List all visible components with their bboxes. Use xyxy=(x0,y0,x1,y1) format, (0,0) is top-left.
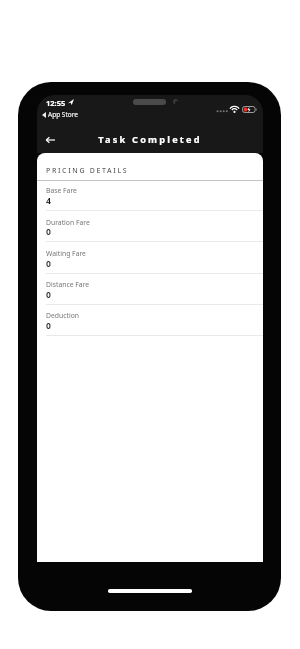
staticText: 4 xyxy=(46,195,51,207)
button[interactable] xyxy=(37,246,263,277)
staticText: Waiting Fare xyxy=(46,249,86,258)
staticText: 0 xyxy=(46,258,51,270)
staticText: PRICING DETAILS xyxy=(46,166,129,176)
button[interactable] xyxy=(37,308,263,339)
staticText: Deduction xyxy=(46,311,79,320)
staticText: 12:55 xyxy=(46,98,66,108)
button[interactable] xyxy=(37,277,263,308)
button[interactable] xyxy=(37,183,263,214)
button[interactable] xyxy=(37,214,263,245)
button[interactable] xyxy=(42,132,58,147)
staticText: Distance Fare xyxy=(46,280,90,289)
staticText: Task Completed xyxy=(98,133,202,146)
staticText: 0 xyxy=(46,289,51,301)
staticText: Base Fare xyxy=(46,186,77,195)
staticText: 0 xyxy=(46,226,51,238)
staticText: 0 xyxy=(46,320,51,332)
staticText: Duration Fare xyxy=(46,218,90,227)
button[interactable]: App Store xyxy=(48,110,78,119)
